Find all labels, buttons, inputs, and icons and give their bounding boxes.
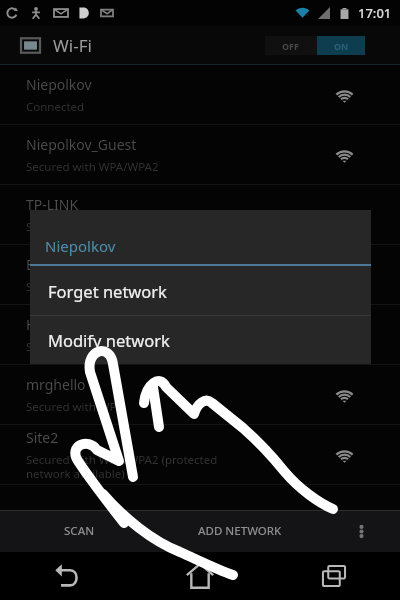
staticText: Secured with WPA/WPA2 <box>26 159 159 175</box>
button[interactable]: SCAN <box>0 510 158 552</box>
staticText: OFF <box>282 40 300 52</box>
staticText: Secured with WPA/WPA2 <box>26 279 159 295</box>
button[interactable]: Site2 <box>0 425 400 484</box>
button[interactable]: Forget network <box>30 266 371 315</box>
button[interactable]: Home-24 <box>0 305 400 364</box>
button[interactable]: Home <box>133 552 267 600</box>
button[interactable]: Back <box>0 552 133 600</box>
button[interactable]: Recent apps <box>267 552 400 600</box>
staticText: Secured with WPA/WPA2 (protected network… <box>26 452 218 481</box>
staticText: Connected <box>26 99 85 115</box>
button[interactable]: Niepolkov_Guest <box>0 125 400 184</box>
staticText: Niepolkov <box>26 75 92 94</box>
staticText: Elchev <box>26 255 68 274</box>
staticText: Secured with WPA <box>26 399 124 415</box>
staticText: ON <box>334 40 349 52</box>
button[interactable]: Niepolkov <box>0 65 400 124</box>
button[interactable]: ADD NETWORK <box>158 510 322 552</box>
button[interactable]: More options <box>322 510 400 552</box>
staticText: TP-LINK <box>26 195 79 214</box>
staticText: 17:01 <box>358 4 392 22</box>
staticText: Forget network <box>48 280 167 302</box>
staticText: Niepolkov <box>45 236 116 256</box>
staticText: ADD NETWORK <box>198 523 282 539</box>
staticText: SCAN <box>64 523 95 539</box>
staticText: Modify network <box>48 329 170 351</box>
button[interactable]: mrghello <box>0 365 400 424</box>
staticText: mrghello <box>26 375 86 394</box>
button[interactable]: Wi-Fi toggle <box>265 36 365 55</box>
staticText: Niepolkov_Guest <box>26 135 137 154</box>
staticText: Secured with WPA/WPA2 <box>26 339 159 355</box>
staticText: Home-24 <box>26 315 87 334</box>
button[interactable]: Modify network <box>30 316 371 364</box>
staticText: Wi-Fi <box>53 34 92 57</box>
button[interactable]: Elchev <box>0 245 400 304</box>
staticText: Secured with WPA/WPA2 <box>26 219 159 235</box>
staticText: Site2 <box>26 428 59 447</box>
button[interactable]: TP-LINK <box>0 185 400 244</box>
